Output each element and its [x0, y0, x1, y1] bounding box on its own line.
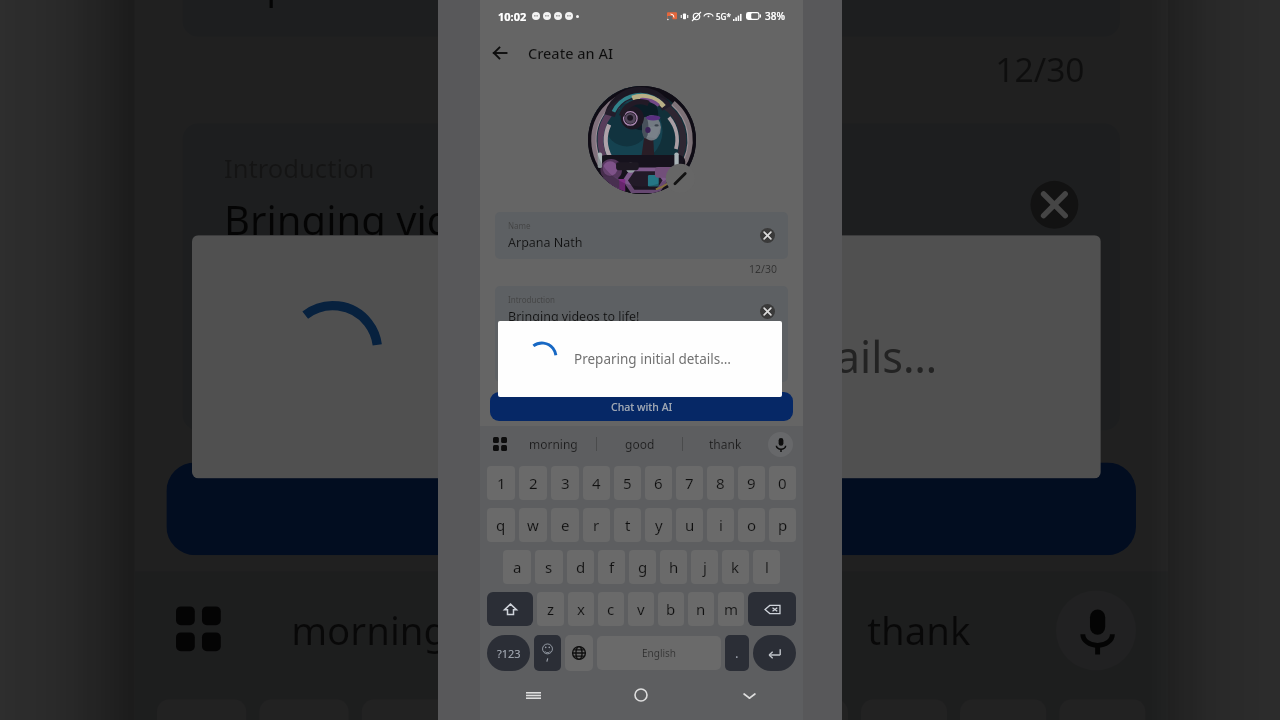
button[interactable]: g — [629, 550, 656, 584]
button[interactable]: Chat with AI — [490, 392, 793, 421]
button[interactable]: Clear introduction — [1030, 181, 1078, 229]
staticText: 9 — [747, 473, 756, 493]
button[interactable]: Clipboard — [490, 434, 510, 454]
button[interactable]: i — [707, 508, 734, 542]
button[interactable]: l — [753, 550, 780, 584]
staticText: thank — [709, 436, 742, 452]
button[interactable]: morning — [230, 571, 506, 686]
button[interactable]: English — [597, 636, 721, 670]
button[interactable]: 3 — [362, 699, 451, 720]
staticText: t — [625, 515, 631, 535]
button[interactable]: z — [537, 592, 564, 626]
button[interactable]: Clipboard — [166, 597, 230, 661]
staticText: d — [576, 557, 586, 577]
button[interactable]: v — [628, 592, 654, 626]
button[interactable]: 4 — [583, 466, 610, 500]
button[interactable]: r — [583, 508, 610, 542]
button[interactable]: Chat with AI — [166, 462, 1136, 555]
button[interactable]: 6 — [645, 466, 672, 500]
button[interactable]: e — [551, 508, 579, 542]
staticText: English — [642, 646, 677, 660]
button[interactable]: ?123 — [487, 635, 530, 671]
button[interactable]: 0 — [769, 466, 796, 500]
button[interactable]: Back — [486, 39, 514, 67]
button[interactable]: 8 — [707, 466, 734, 500]
staticText: Introduction — [224, 149, 374, 184]
button[interactable]: Backspace — [748, 592, 796, 626]
button[interactable]: good — [509, 571, 781, 686]
button[interactable]: Preparing initial details… — [192, 235, 1101, 478]
staticText: a — [513, 557, 522, 577]
button[interactable]: Preparing initial details… — [498, 321, 782, 397]
button[interactable]: 7 — [762, 699, 848, 720]
button[interactable]: good — [597, 426, 682, 462]
button[interactable]: Home — [587, 676, 695, 714]
button[interactable]: 2 — [519, 466, 547, 500]
staticText: b — [666, 599, 676, 619]
button[interactable]: m — [718, 592, 744, 626]
staticText: good — [598, 603, 694, 654]
button[interactable]: Hide keyboard — [695, 676, 803, 714]
button[interactable]: Shift — [487, 592, 533, 626]
button[interactable]: Recents — [480, 676, 587, 714]
button[interactable]: h — [660, 550, 687, 584]
button[interactable]: q — [487, 508, 515, 542]
staticText: e — [561, 515, 570, 535]
staticText: x — [577, 599, 585, 619]
staticText: o — [747, 515, 757, 535]
button[interactable]: Voice input — [768, 432, 793, 457]
button[interactable]: t — [614, 508, 641, 542]
button[interactable]: Emoji — [534, 635, 561, 671]
button[interactable]: x — [568, 592, 594, 626]
button[interactable]: 5 — [614, 466, 641, 500]
button[interactable]: Enter — [753, 635, 796, 671]
staticText: Chat with AI — [554, 488, 752, 533]
staticText: m — [724, 599, 739, 619]
button[interactable]: Clear introduction — [760, 304, 775, 319]
button[interactable]: p — [769, 508, 796, 542]
button[interactable]: thank — [683, 426, 768, 462]
button[interactable]: Name — [182, 0, 1120, 37]
button[interactable]: Voice input — [1056, 590, 1136, 670]
button[interactable]: j — [691, 550, 718, 584]
button[interactable]: s — [535, 550, 563, 584]
button[interactable]: n — [688, 592, 714, 626]
button[interactable]: k — [722, 550, 749, 584]
staticText: 2 — [529, 473, 538, 493]
staticText: g — [638, 557, 648, 577]
button[interactable]: 1 — [487, 466, 515, 500]
button[interactable]: u — [676, 508, 703, 542]
staticText: w — [527, 515, 539, 535]
button[interactable]: 3 — [551, 466, 579, 500]
button[interactable]: Clear name — [760, 228, 775, 243]
button[interactable]: 5 — [563, 699, 650, 720]
button[interactable]: o — [738, 508, 765, 542]
button[interactable]: f — [598, 550, 625, 584]
button[interactable]: a — [503, 550, 531, 584]
button[interactable]: . — [725, 635, 749, 671]
staticText: Preparing initial details… — [435, 328, 938, 386]
button[interactable]: Introduction — [182, 123, 1120, 430]
button[interactable]: 7 — [676, 466, 703, 500]
button[interactable]: morning — [510, 426, 596, 462]
button[interactable]: d — [567, 550, 594, 584]
button[interactable]: thank — [784, 571, 1056, 686]
button[interactable]: c — [598, 592, 624, 626]
button[interactable]: b — [658, 592, 684, 626]
button[interactable]: y — [645, 508, 672, 542]
staticText: Preparing initial details… — [574, 350, 731, 368]
staticText: 12/30 — [749, 262, 777, 276]
staticText: y — [655, 515, 663, 535]
button[interactable]: w — [519, 508, 547, 542]
button[interactable]: 9 — [738, 466, 765, 500]
button[interactable]: Introduction — [495, 286, 788, 382]
button[interactable]: Name — [495, 212, 788, 259]
button[interactable]: Change language — [565, 635, 593, 671]
